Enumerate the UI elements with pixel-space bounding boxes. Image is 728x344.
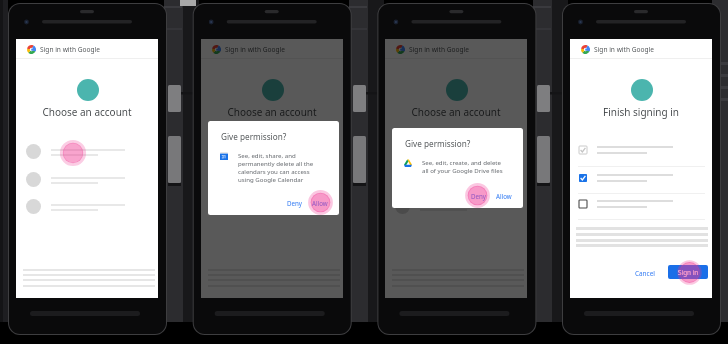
button[interactable]: Sign in bbox=[668, 265, 708, 279]
staticText: Sign in with Google bbox=[409, 45, 469, 54]
staticText: Allow bbox=[496, 192, 512, 200]
staticText: permanently delete all the bbox=[238, 159, 314, 167]
staticText: See, edit, share, and bbox=[238, 151, 296, 159]
staticText: Cancel bbox=[635, 269, 655, 278]
button[interactable]: Deny bbox=[287, 197, 302, 208]
button[interactable] bbox=[385, 196, 527, 218]
staticText: calendars you can access bbox=[238, 167, 310, 175]
staticText: using Google Calendar bbox=[238, 175, 304, 183]
button[interactable] bbox=[570, 166, 712, 190]
button[interactable] bbox=[16, 169, 158, 191]
staticText: Sign in with Google bbox=[594, 45, 654, 54]
staticText: Give permission? bbox=[405, 138, 471, 149]
button[interactable] bbox=[201, 169, 343, 191]
staticText: Finish signing in bbox=[570, 105, 712, 119]
staticText: Give permission? bbox=[221, 131, 287, 142]
button[interactable] bbox=[16, 141, 158, 163]
staticText: Sign in with Google bbox=[225, 45, 285, 54]
staticText: Choose an account bbox=[16, 105, 158, 119]
button[interactable]: Allow bbox=[496, 190, 512, 201]
button[interactable]: Deny bbox=[471, 190, 486, 201]
staticText: Choose an account bbox=[201, 105, 343, 119]
button[interactable] bbox=[570, 192, 712, 216]
button[interactable] bbox=[201, 141, 343, 163]
staticText: See, edit, create, and delete bbox=[422, 158, 501, 166]
staticText: Sign in with Google bbox=[40, 45, 100, 54]
button[interactable] bbox=[385, 141, 527, 163]
staticText: Sign in bbox=[678, 268, 699, 277]
button[interactable]: Allow bbox=[312, 197, 328, 208]
button[interactable]: Cancel bbox=[635, 267, 655, 279]
button[interactable] bbox=[385, 169, 527, 191]
staticText: Allow bbox=[312, 199, 328, 207]
button[interactable] bbox=[201, 196, 343, 218]
button[interactable] bbox=[570, 138, 712, 162]
staticText: Deny bbox=[471, 192, 486, 200]
staticText: Deny bbox=[287, 199, 302, 207]
staticText: Choose an account bbox=[385, 105, 527, 119]
staticText: all of your Google Drive files bbox=[422, 166, 503, 174]
button[interactable] bbox=[16, 196, 158, 218]
